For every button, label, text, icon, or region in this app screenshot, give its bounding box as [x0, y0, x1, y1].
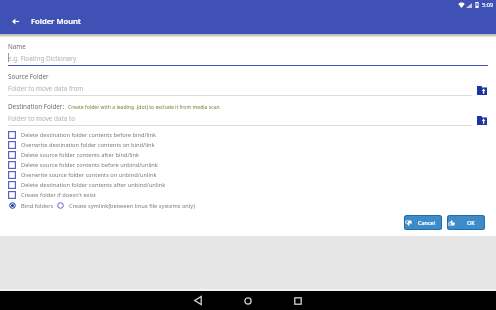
button[interactable]: Back: [173, 291, 223, 310]
staticText: Overwrite source folder contents on unbi…: [21, 171, 157, 179]
staticText: e.g. Floating Dictionary: [8, 54, 77, 63]
staticText: 5:09: [482, 1, 494, 9]
staticText: Create folder if doesn't exist: [21, 191, 96, 199]
button[interactable]: Home: [223, 291, 273, 310]
staticText: Delete source folder contents after bind…: [21, 151, 140, 159]
staticText: Create folder with a leading .(dot) to e…: [68, 104, 220, 111]
staticText: Destination Folder:: [8, 102, 65, 111]
staticText: Overwrite destination folder contents on…: [21, 141, 155, 149]
button[interactable]: Cancel: [405, 216, 441, 229]
button[interactable]: Delete destination folder contents befor…: [8, 130, 496, 140]
button[interactable]: Browse folder: [472, 113, 491, 126]
staticText: Name: [8, 42, 26, 51]
button[interactable]: OK: [448, 216, 484, 229]
button[interactable]: Recents: [273, 291, 323, 310]
button[interactable]: Create symlink(between linux file system…: [56, 201, 195, 210]
staticText: Folder Mount: [31, 16, 81, 26]
staticText: Delete destination folder contents after…: [21, 181, 166, 189]
staticText: Delete destination folder contents befor…: [21, 131, 157, 139]
staticText: Source Folder: [8, 72, 49, 81]
staticText: OK: [467, 219, 475, 226]
staticText: Folder to move data from: [8, 84, 84, 93]
staticText: Cancel: [418, 219, 436, 226]
button[interactable]: Overwrite source folder contents on unbi…: [8, 170, 496, 180]
button[interactable]: Overwrite destination folder contents on…: [8, 140, 496, 150]
button[interactable]: Back: [8, 14, 22, 28]
button[interactable]: Bind folders: [8, 201, 54, 210]
staticText: Folder to move data to: [8, 114, 75, 123]
staticText: Create symlink(between linux file system…: [69, 202, 195, 210]
button[interactable]: Delete source folder contents before unb…: [8, 160, 496, 170]
staticText: Delete source folder contents before unb…: [21, 161, 158, 169]
button[interactable]: Create folder if doesn't exist: [8, 190, 496, 200]
button[interactable]: Browse folder: [472, 83, 491, 96]
button[interactable]: Delete destination folder contents after…: [8, 180, 496, 190]
button[interactable]: Delete source folder contents after bind…: [8, 150, 496, 160]
staticText: Bind folders: [21, 202, 54, 210]
